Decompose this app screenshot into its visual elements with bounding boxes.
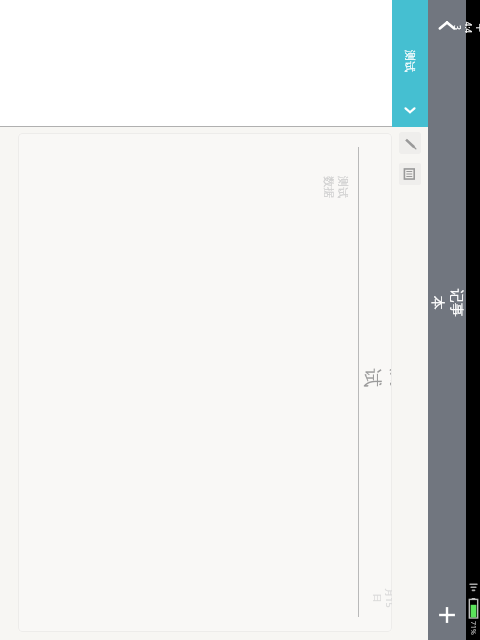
staticText: 测试 <box>403 50 417 72</box>
button[interactable]: 测试 <box>18 133 392 632</box>
staticText: 71% <box>468 621 478 635</box>
staticText: 测试数据 <box>322 174 350 200</box>
staticText: 2015年02月15日 <box>371 586 421 610</box>
other: Expand <box>401 101 419 119</box>
button[interactable]: Edit <box>399 132 421 154</box>
button[interactable]: Back <box>433 12 461 40</box>
button[interactable]: Notes list <box>399 163 421 185</box>
button[interactable]: Add note <box>430 598 464 632</box>
button[interactable]: 测试 <box>392 0 428 127</box>
staticText: 测试 <box>360 363 392 393</box>
staticText: 下午4:43 <box>451 20 480 34</box>
staticText: 记事本 <box>429 288 465 318</box>
